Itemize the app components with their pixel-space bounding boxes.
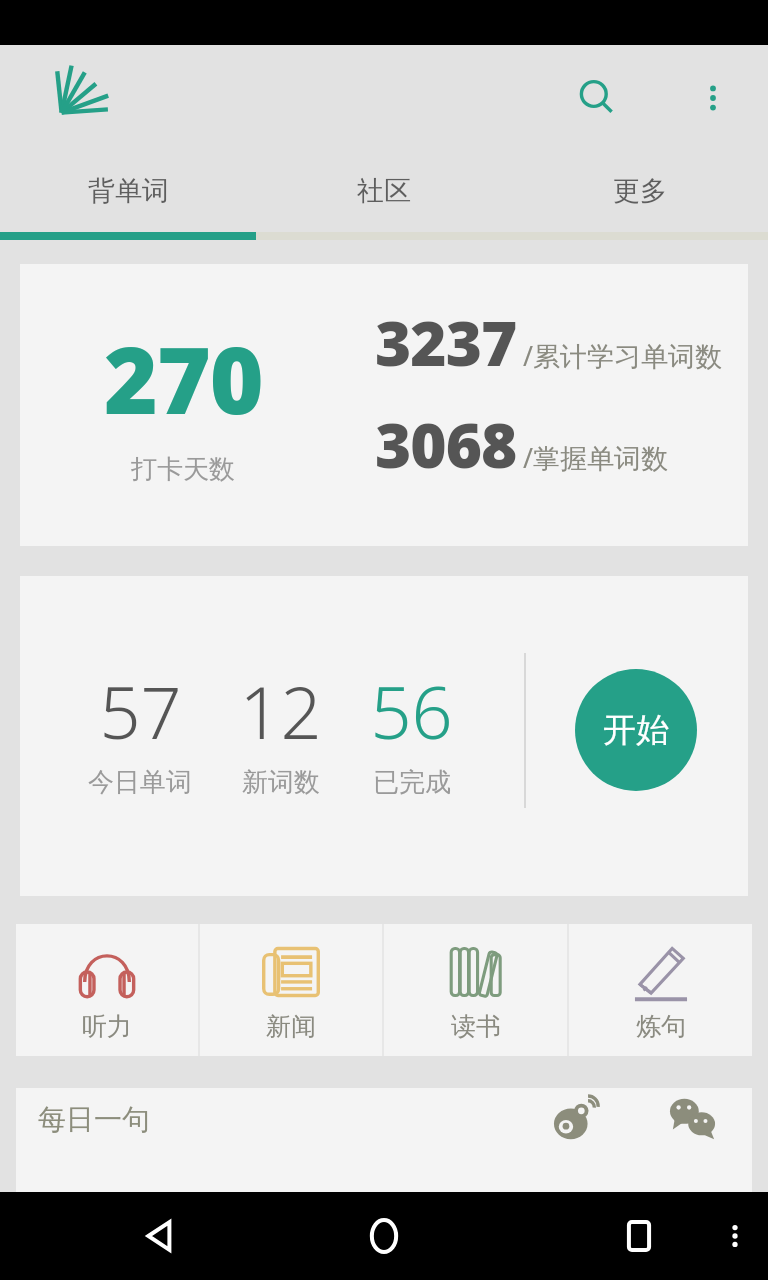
staticText: 今日单词 — [88, 766, 192, 799]
button[interactable]: 更多 — [512, 150, 768, 232]
button[interactable]: 社区 — [256, 150, 512, 232]
staticText: 新闻 — [266, 1011, 316, 1042]
button[interactable]: 读书 — [384, 924, 567, 1056]
button[interactable]: 开始 — [575, 669, 697, 791]
button[interactable]: 12 — [239, 662, 322, 799]
staticText: /掌握单词数 — [523, 439, 669, 476]
button[interactable]: More options — [684, 69, 742, 127]
button[interactable]: 每日一句 — [16, 1088, 752, 1150]
button[interactable]: Logo — [20, 55, 100, 135]
button[interactable]: 听力 — [16, 924, 198, 1056]
staticText: /累计学习单词数 — [523, 337, 723, 374]
button[interactable]: Share to WeChat — [664, 1090, 722, 1148]
staticText: 57 — [99, 662, 182, 760]
button[interactable]: 270 — [20, 264, 748, 546]
staticText: 3237 — [375, 300, 517, 384]
button[interactable]: More options — [708, 1209, 762, 1263]
button[interactable]: Home — [353, 1205, 415, 1267]
staticText: 270 — [104, 316, 263, 441]
staticText: 炼句 — [636, 1011, 686, 1042]
button[interactable]: Recent apps — [608, 1205, 670, 1267]
staticText: 12 — [239, 662, 322, 760]
button[interactable]: Back — [130, 1205, 192, 1267]
staticText: 新词数 — [242, 766, 320, 799]
staticText: 社区 — [357, 174, 411, 208]
button[interactable]: Share to Weibo — [548, 1090, 606, 1148]
staticText: 56 — [370, 662, 453, 760]
staticText: 3068 — [375, 402, 517, 486]
staticText: 背单词 — [88, 174, 169, 208]
staticText: 读书 — [451, 1011, 501, 1042]
button[interactable]: 新闻 — [200, 924, 382, 1056]
staticText: 更多 — [613, 174, 667, 208]
staticText: 听力 — [82, 1011, 132, 1042]
button[interactable]: 57 — [88, 662, 192, 799]
button[interactable]: 炼句 — [569, 924, 752, 1056]
button[interactable]: Search — [565, 66, 629, 130]
staticText: 打卡天数 — [131, 453, 235, 486]
button[interactable]: 背单词 — [0, 150, 256, 232]
staticText: 每日一句 — [38, 1102, 150, 1137]
button[interactable]: 56 — [370, 662, 453, 799]
staticText: 已完成 — [373, 766, 451, 799]
staticText: 开始 — [603, 709, 669, 751]
